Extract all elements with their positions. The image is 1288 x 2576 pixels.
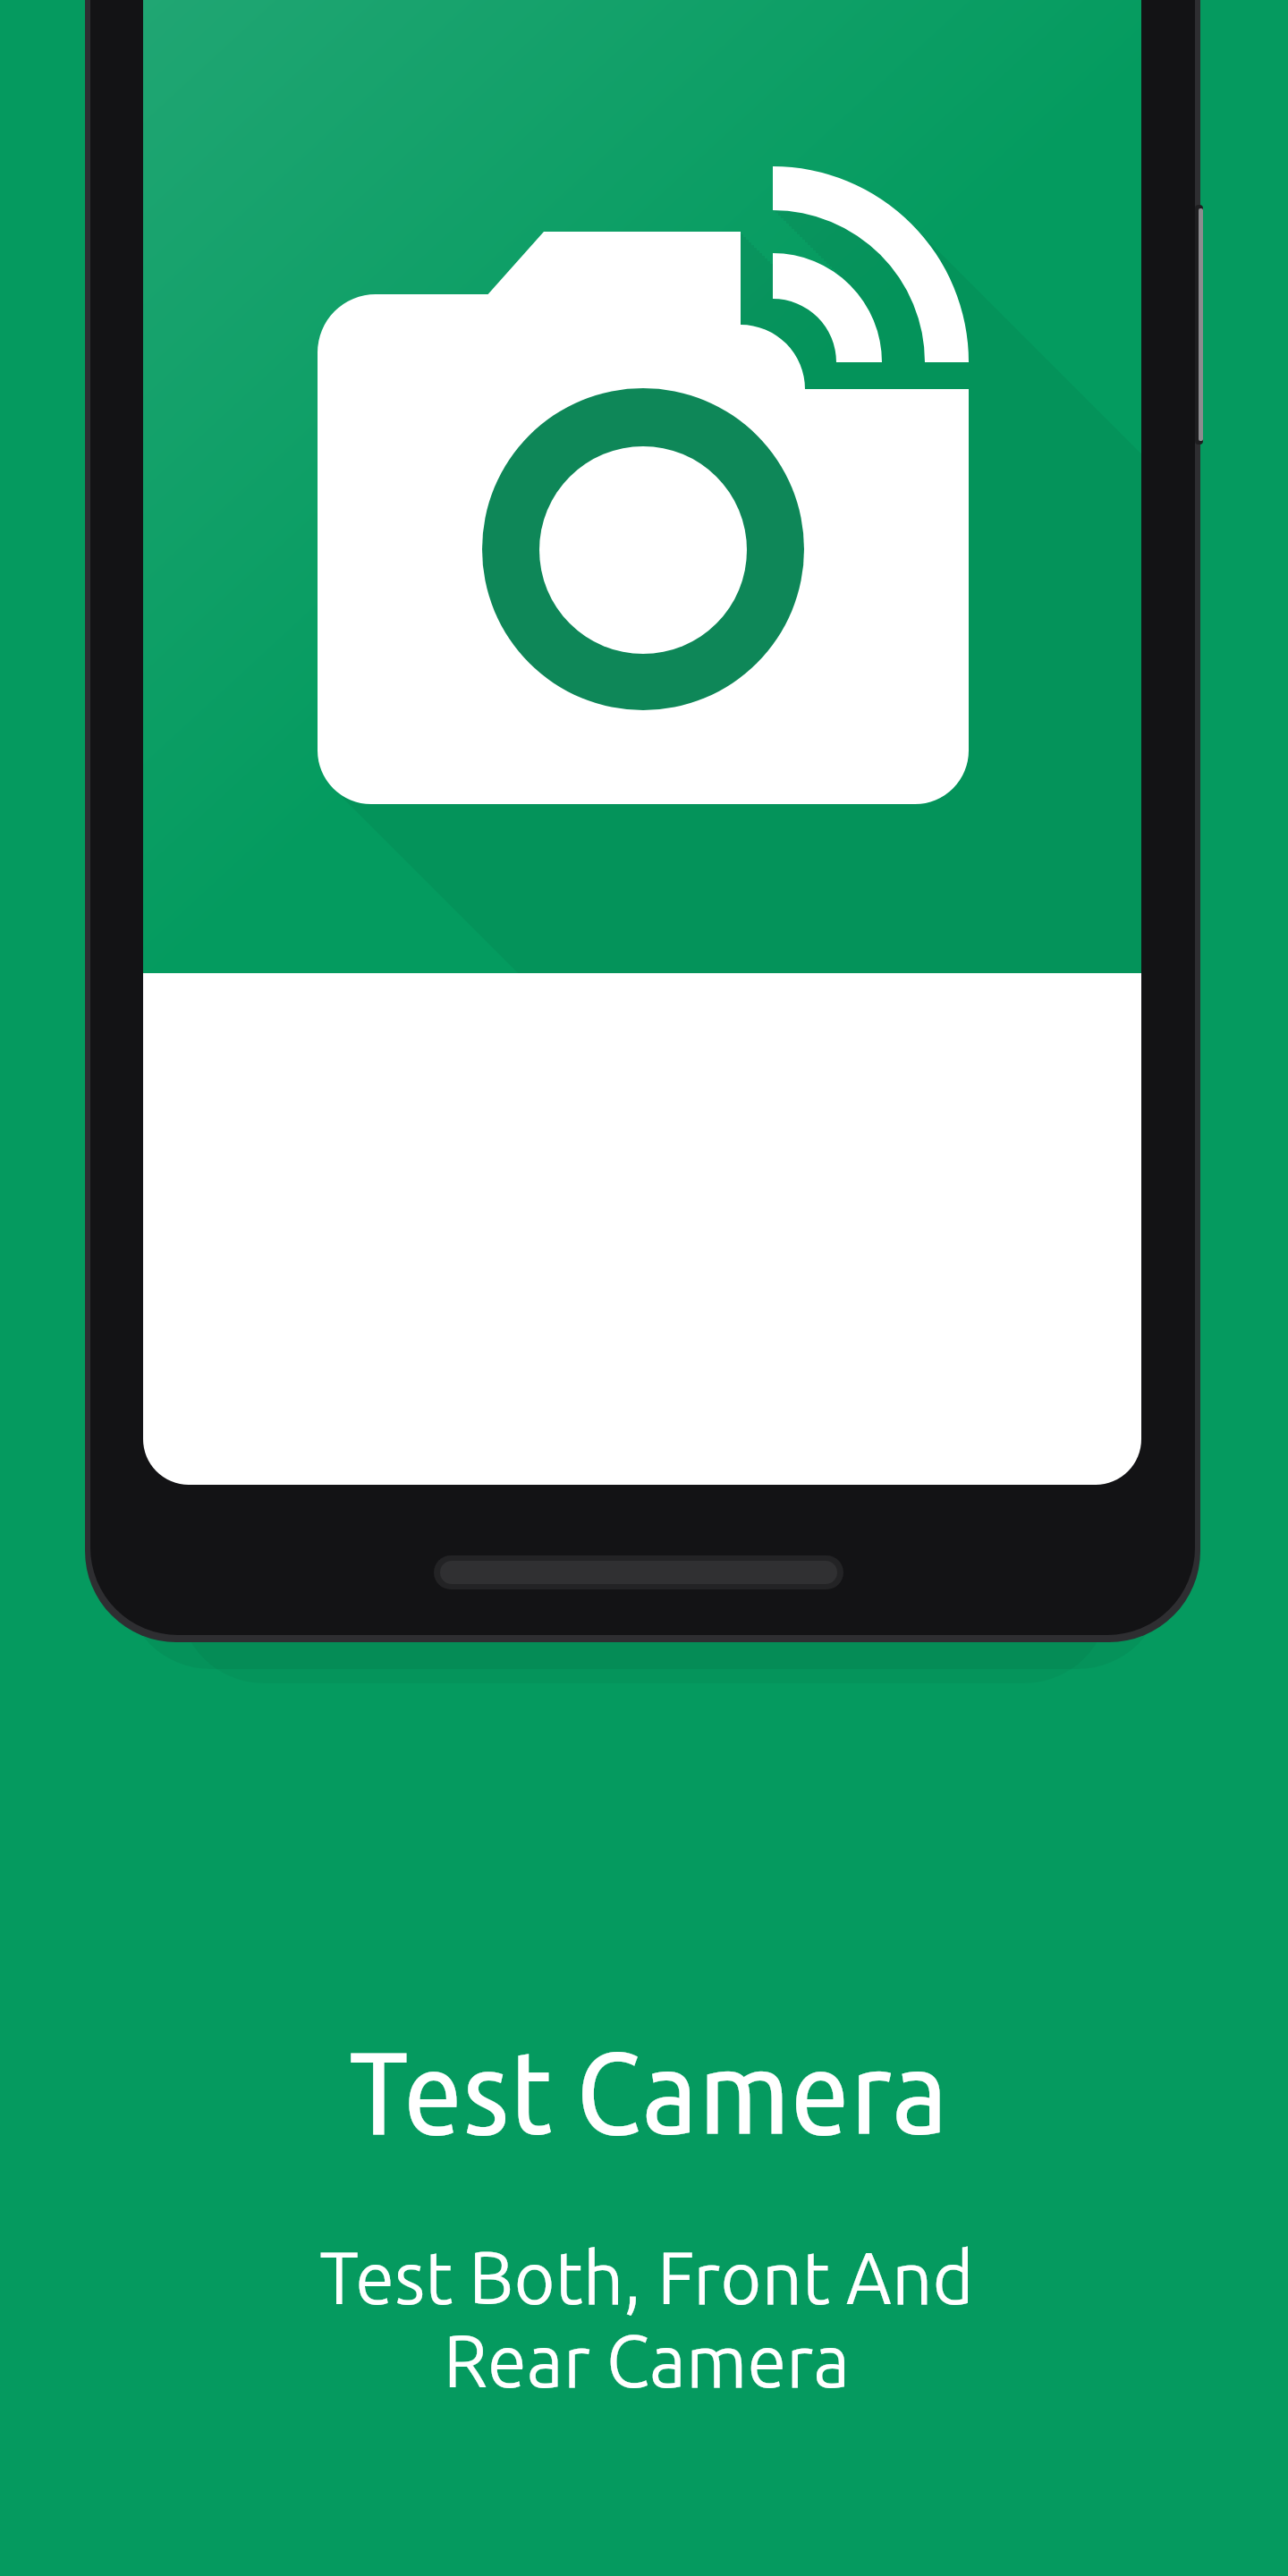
staticText: Test Camera <box>4 2026 1288 2157</box>
staticText: Test Both, Front And Rear Camera <box>3 2236 1288 2402</box>
